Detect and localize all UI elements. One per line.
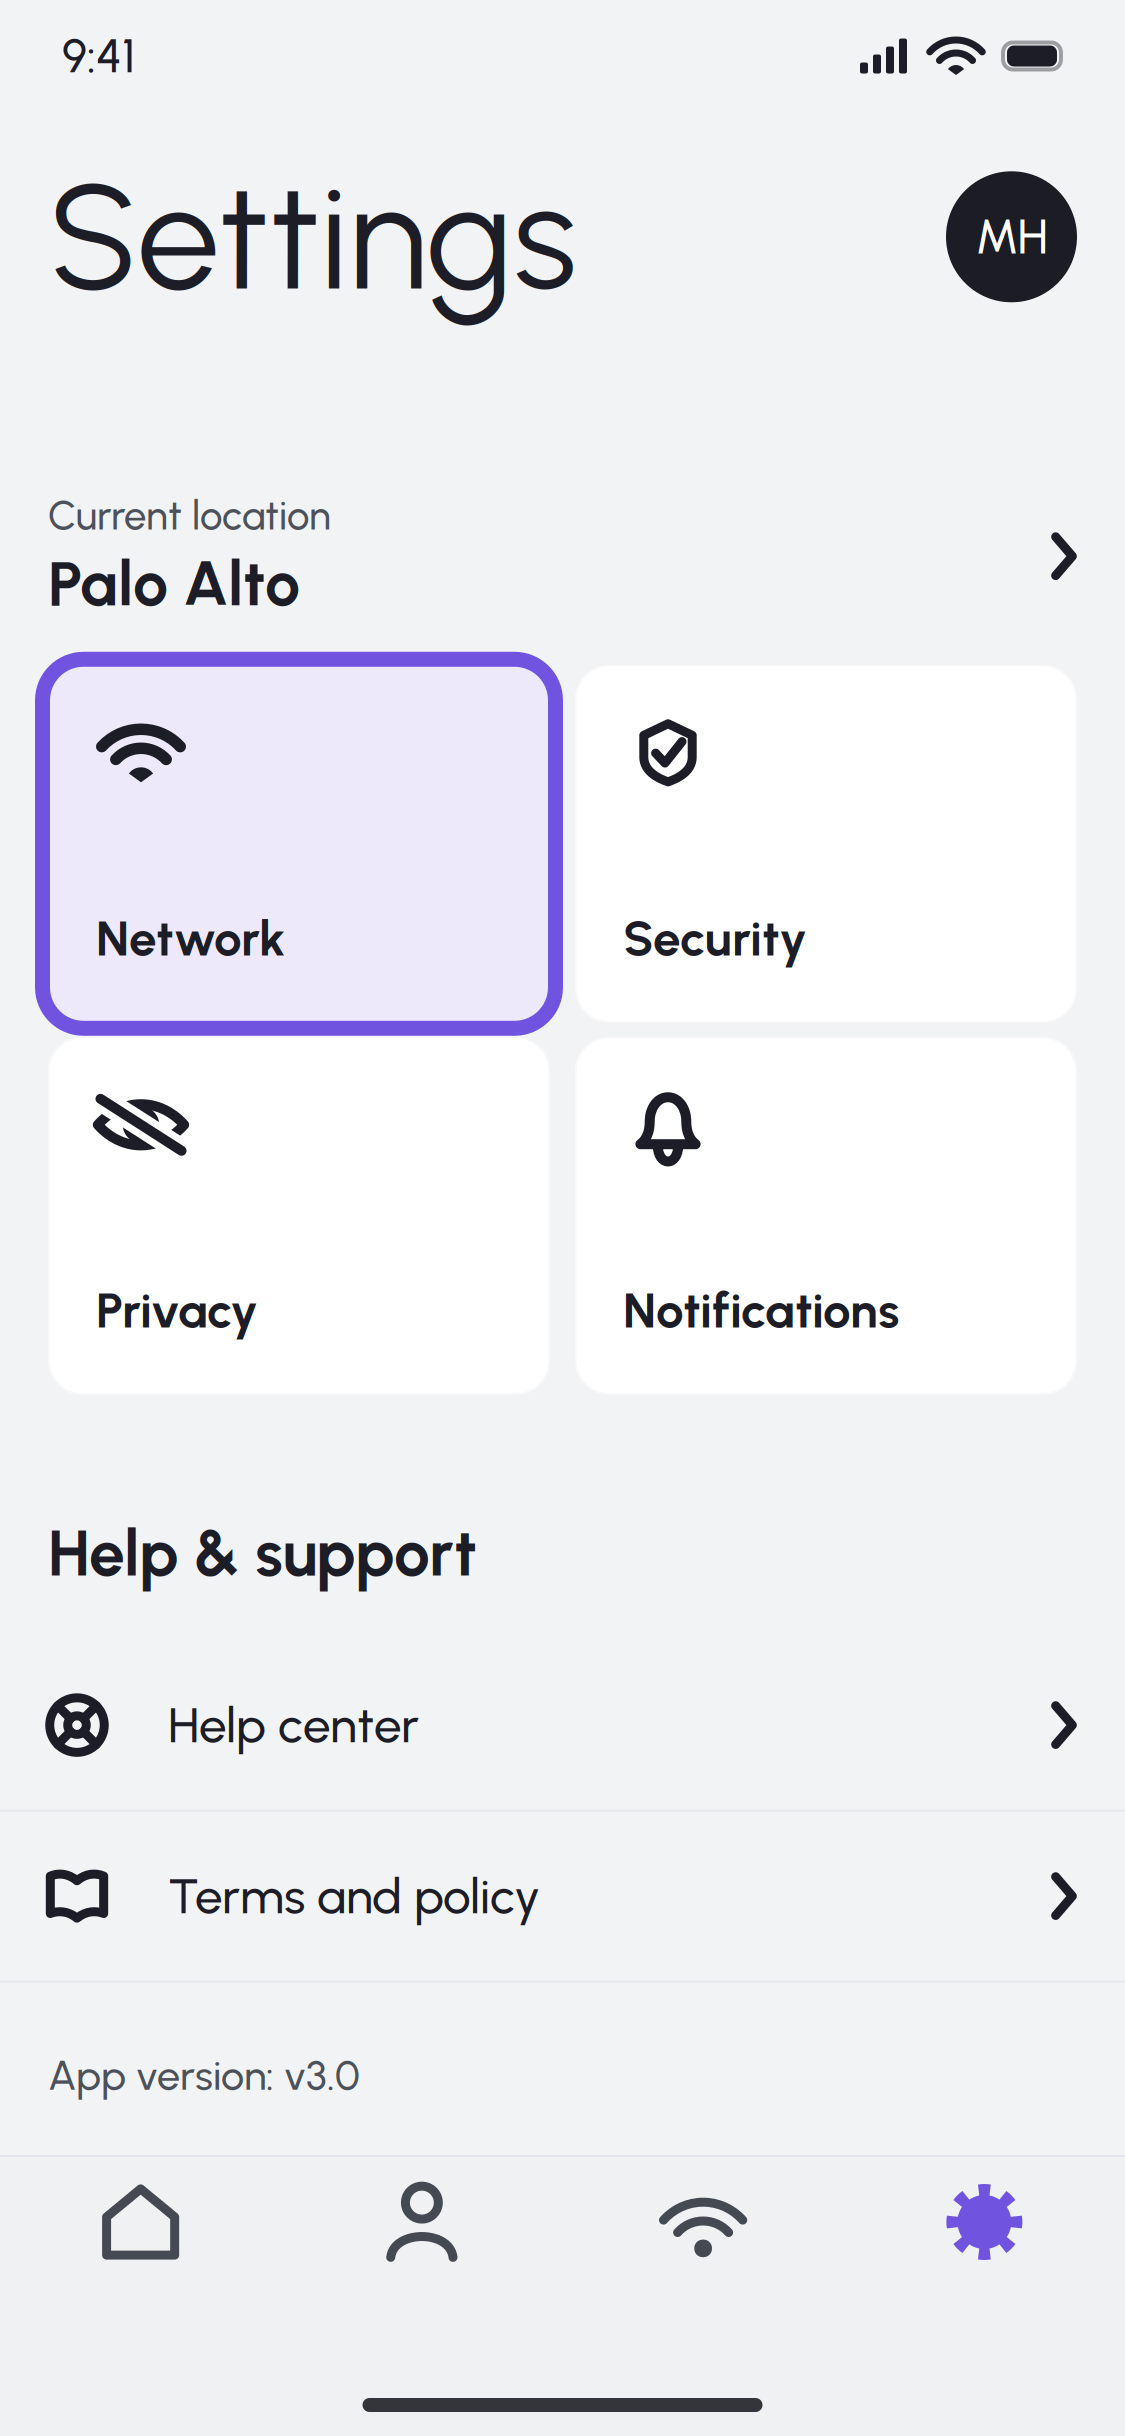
button[interactable]: Help center <box>0 1641 1125 1810</box>
button[interactable]: Privacy <box>48 1037 550 1395</box>
staticText: Help center <box>168 1695 419 1755</box>
staticText: Current location <box>48 492 331 540</box>
button[interactable]: Current location <box>0 492 1125 621</box>
staticText: Notifications <box>623 1281 899 1340</box>
staticText: Security <box>623 909 807 968</box>
button[interactable]: Notifications <box>575 1037 1077 1395</box>
button[interactable]: Profile MH <box>946 171 1077 302</box>
staticText: Palo Alto <box>48 546 300 621</box>
button[interactable]: Network <box>562 2157 844 2287</box>
staticText: Network <box>96 909 285 968</box>
staticText: Privacy <box>96 1281 258 1340</box>
button[interactable]: Profile <box>281 2157 562 2287</box>
staticText: 9:41 <box>62 28 135 84</box>
staticText: Help & support <box>48 1515 477 1592</box>
staticText: App version: v3.0 <box>48 2050 360 2100</box>
staticText: MH <box>975 208 1047 266</box>
button[interactable]: Settings <box>844 2157 1125 2287</box>
button[interactable]: Security <box>575 665 1077 1023</box>
staticText: Terms and policy <box>168 1866 540 1926</box>
button[interactable]: Network <box>48 665 550 1023</box>
staticText: Settings <box>48 148 577 326</box>
button[interactable]: Home <box>0 2157 281 2287</box>
button[interactable]: Terms and policy <box>0 1812 1125 1981</box>
